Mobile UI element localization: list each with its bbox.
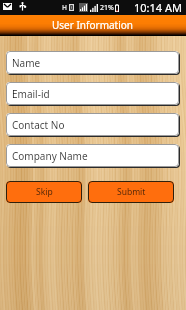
staticText: Company Name	[12, 149, 88, 163]
staticText: Contact No	[12, 118, 65, 132]
button[interactable]: Submit	[88, 181, 174, 203]
staticText: User Information	[52, 18, 134, 32]
button[interactable]: Email-id	[6, 82, 180, 106]
staticText: 10:14 AM	[134, 0, 182, 15]
staticText: Submit	[117, 186, 146, 198]
button[interactable]: Name	[6, 51, 180, 75]
staticText: Skip	[36, 186, 53, 198]
staticText: Name	[12, 56, 41, 70]
staticText: Email-id	[12, 87, 50, 101]
button[interactable]: Company Name	[6, 144, 180, 168]
button[interactable]: Contact No	[6, 113, 180, 137]
staticText: 21%	[100, 3, 114, 13]
button[interactable]: Skip	[6, 181, 82, 203]
